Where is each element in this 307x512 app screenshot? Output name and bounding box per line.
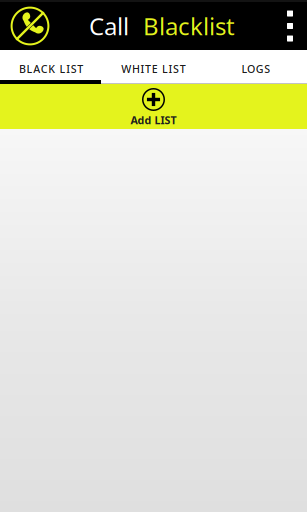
button[interactable]: More options [273, 2, 307, 50]
button[interactable]: BLACK LIST [0, 50, 102, 80]
button[interactable]: Add LIST [0, 84, 307, 129]
staticText: LOGS [241, 62, 270, 76]
button[interactable]: WHITE LIST [102, 50, 205, 80]
staticText: BLACK LIST [19, 62, 83, 76]
staticText: WHITE LIST [121, 62, 186, 76]
staticText: Blacklist [143, 10, 235, 42]
staticText: Call [89, 10, 129, 42]
staticText: Add LIST [130, 113, 176, 127]
button[interactable]: LOGS [205, 50, 307, 80]
